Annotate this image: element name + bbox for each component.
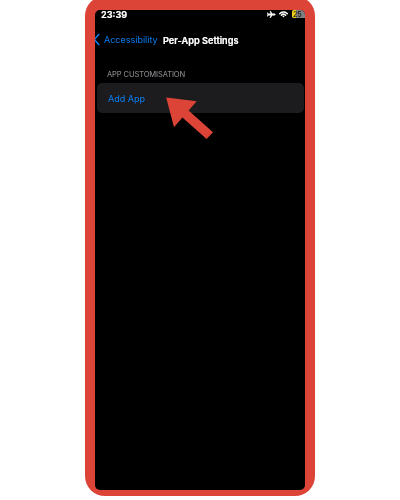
staticText: APP CUSTOMISATION [107, 70, 186, 79]
staticText: 23:39 [101, 10, 128, 20]
staticText: Add App [108, 93, 145, 104]
staticText: Accessibility [104, 34, 158, 45]
staticText: Per-App Settings [163, 35, 239, 46]
staticText: 25 [293, 10, 302, 18]
button[interactable]: Add App [97, 83, 304, 113]
other: Back [95, 34, 99, 45]
button[interactable]: Back [95, 32, 159, 47]
